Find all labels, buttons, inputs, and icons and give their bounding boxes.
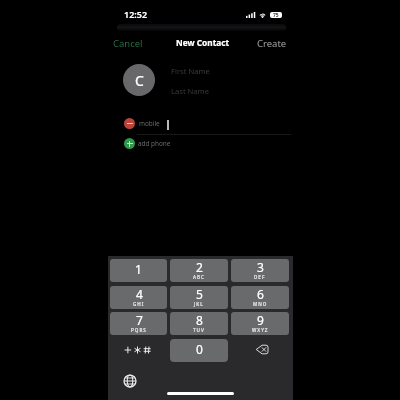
staticText: 6 [257,286,264,302]
staticText: 9 [257,312,264,328]
staticText: 5 [196,286,203,302]
button[interactable]: Symbols [110,339,167,362]
button[interactable]: 0 [170,339,228,362]
staticText: TUV [193,327,205,333]
staticText: C [135,71,144,90]
staticText: 12:52 [124,8,148,20]
button[interactable]: Change keyboard [123,374,137,388]
staticText: First Name [171,66,210,76]
button[interactable]: 9 [231,312,289,335]
button[interactable]: 1 [110,259,167,282]
button[interactable]: 2 [170,259,228,282]
button[interactable]: Delete [231,339,289,362]
button[interactable]: First Name [171,63,281,79]
staticText: ABC [193,274,205,280]
staticText: 75 [273,12,279,18]
staticText: 2 [196,259,203,275]
button[interactable]: Cancel [111,35,145,52]
staticText: GHI [133,301,145,307]
staticText: add phone [138,139,171,148]
button[interactable]: 6 [231,286,289,309]
staticText: DEF [254,274,266,280]
staticText: WXYZ [252,327,269,333]
staticText: 3 [257,259,264,275]
button[interactable]: 7 [110,312,167,335]
button[interactable]: add phone [124,138,171,149]
staticText: mobile [139,119,160,128]
staticText: Cancel [113,37,143,50]
staticText: 0 [196,341,203,357]
staticText: 4 [136,286,143,302]
staticText: JKL [194,301,204,307]
staticText: 8 [196,312,203,328]
button[interactable]: 5 [170,286,228,309]
staticText: Last Name [171,86,210,96]
button[interactable]: Last Name [171,83,281,99]
staticText: Create [257,37,287,50]
staticText: New Contact [176,37,230,48]
staticText: PQRS [131,327,147,333]
button[interactable]: 4 [110,286,167,309]
button[interactable]: 3 [231,259,289,282]
button[interactable]: 8 [170,312,228,335]
button[interactable]: Create [255,35,289,52]
button[interactable]: Remove phone number [124,118,135,129]
staticText: 7 [136,312,143,328]
staticText: MNO [253,301,268,307]
button[interactable]: Add photo [123,64,155,96]
staticText: 1 [135,261,142,277]
